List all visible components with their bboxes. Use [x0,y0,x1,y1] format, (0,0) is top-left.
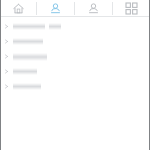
button[interactable]: Profile [37,0,74,17]
button[interactable] [0,49,150,64]
button[interactable]: Apps [113,0,150,17]
button[interactable]: Home [0,0,36,17]
button[interactable] [0,34,150,49]
button[interactable]: Contacts [75,0,112,17]
button[interactable] [0,79,150,94]
button[interactable] [0,64,150,79]
button[interactable] [0,19,150,34]
